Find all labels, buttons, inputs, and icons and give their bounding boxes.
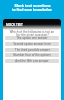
staticText: Second option answer here bbox=[13, 42, 51, 46]
staticText: Number four of the options bbox=[13, 53, 51, 57]
staticText: The option one answer bbox=[16, 36, 48, 40]
button[interactable]: The option one answer bbox=[5, 36, 59, 40]
staticText: MOCK TEST bbox=[6, 23, 23, 27]
staticText: And the fifth one answer bbox=[15, 59, 49, 63]
button[interactable]: Second option answer here bbox=[5, 42, 59, 46]
staticText: Mock test questions bbox=[14, 3, 51, 7]
button[interactable]: The third possible answer bbox=[5, 48, 59, 52]
staticText: to find your knowledge bbox=[12, 7, 52, 11]
staticText: The third possible answer bbox=[15, 48, 50, 52]
staticText: Which of the following is not an option bbox=[5, 30, 59, 33]
staticText: for the given question? bbox=[16, 33, 49, 36]
button[interactable]: And the fifth one answer bbox=[5, 59, 59, 63]
button[interactable]: Number four of the options bbox=[5, 53, 59, 57]
